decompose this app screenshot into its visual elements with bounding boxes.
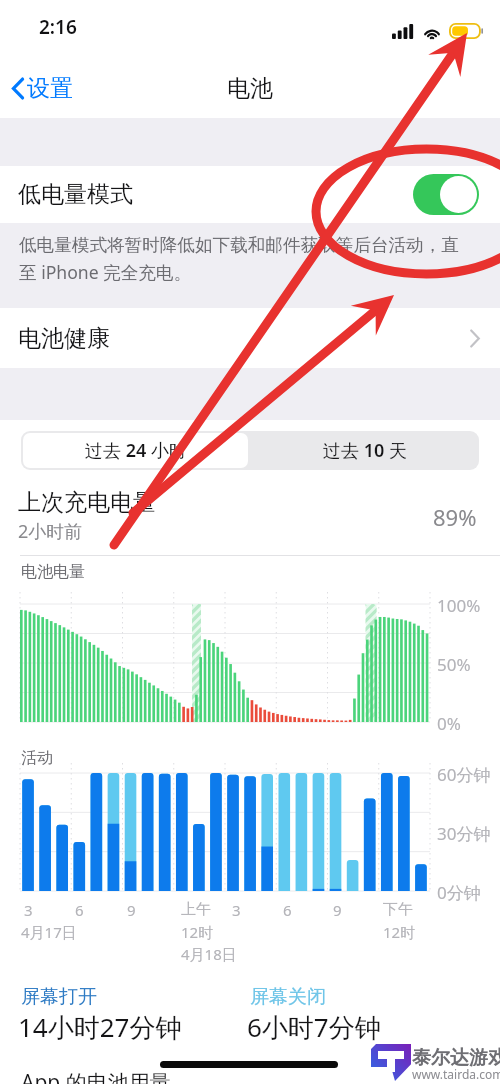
staticText: 6小时7分钟 xyxy=(247,1009,381,1045)
staticText: 6 xyxy=(283,900,292,920)
button[interactable]: 电池健康 xyxy=(0,308,500,368)
staticText: 3 xyxy=(24,900,33,920)
staticText: 4月17日 xyxy=(21,922,77,942)
staticText: 30分钟 xyxy=(437,822,491,845)
staticText: 下午 xyxy=(383,900,413,919)
staticText: 4月18日 xyxy=(181,944,237,964)
staticText: 100% xyxy=(437,594,481,617)
staticText: 2小时前 xyxy=(18,519,83,544)
staticText: 14小时27分钟 xyxy=(18,1009,182,1045)
staticText: 屏幕打开 xyxy=(21,985,97,1009)
staticText: 6 xyxy=(75,900,84,920)
staticText: www.tairda.com xyxy=(412,1066,500,1082)
staticText: 过去 10 天 xyxy=(323,438,407,463)
staticText: 电池 xyxy=(227,74,273,103)
staticText: 低电量模式 xyxy=(18,180,133,209)
staticText: 2:16 xyxy=(39,14,77,40)
staticText: 设置 xyxy=(27,74,73,103)
staticText: 泰尔达游戏网 xyxy=(412,1046,500,1070)
button[interactable]: 过去 24 小时 xyxy=(23,433,248,468)
staticText: 89% xyxy=(433,502,477,532)
staticText: 低电量模式将暂时降低如下载和邮件获取等后台活动，直 xyxy=(19,234,459,256)
button[interactable]: 设置 xyxy=(0,66,83,111)
staticText: 3 xyxy=(232,900,241,920)
staticText: 0分钟 xyxy=(437,881,481,904)
staticText: 上次充电电量 xyxy=(18,488,156,517)
staticText: 电池健康 xyxy=(18,324,110,353)
button[interactable]: 过去 10 天 xyxy=(250,431,479,470)
staticText: 0% xyxy=(437,712,461,735)
staticText: 屏幕关闭 xyxy=(250,985,326,1009)
staticText: 过去 24 小时 xyxy=(85,438,187,463)
staticText: 60分钟 xyxy=(437,763,491,786)
staticText: 活动 xyxy=(21,748,53,768)
staticText: 50% xyxy=(437,653,471,676)
staticText: 至 iPhone 完全充电。 xyxy=(19,260,192,284)
staticText: 9 xyxy=(333,900,342,920)
staticText: 12时 xyxy=(181,922,214,942)
button[interactable]: Low Power Mode toggle xyxy=(413,174,479,215)
staticText: 上午 xyxy=(181,900,211,919)
staticText: 9 xyxy=(127,900,136,920)
button[interactable]: 低电量模式 xyxy=(0,166,500,223)
staticText: 电池电量 xyxy=(21,562,85,582)
staticText: App 的电池用量 xyxy=(21,1068,171,1084)
staticText: 12时 xyxy=(383,922,416,942)
